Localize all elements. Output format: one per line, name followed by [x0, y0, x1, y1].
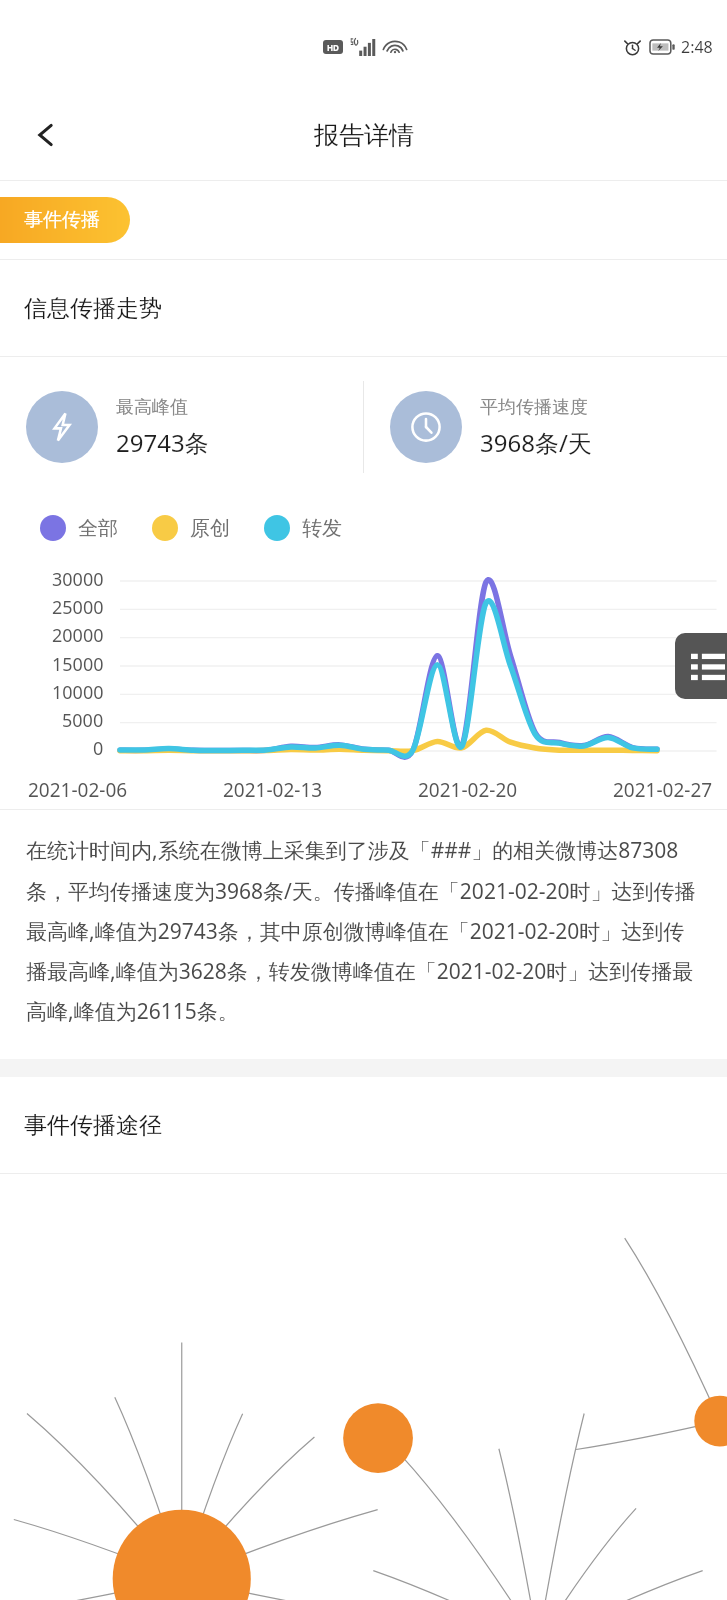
- staticText: 30000: [52, 567, 104, 592]
- button[interactable]: List view: [675, 633, 727, 699]
- staticText: 最高峰值: [116, 396, 188, 419]
- staticText: 15000: [52, 652, 104, 677]
- staticText: 信息传播走势: [24, 294, 162, 323]
- staticText: 事件传播: [24, 208, 100, 232]
- staticText: 转发: [302, 516, 342, 541]
- staticText: 2021-02-20: [418, 777, 518, 803]
- staticText: 29743条: [116, 426, 209, 459]
- button[interactable]: 平均传播速度: [390, 357, 727, 497]
- staticText: HD: [327, 42, 339, 53]
- staticText: 20000: [52, 623, 104, 648]
- staticText: 25000: [52, 595, 104, 620]
- button[interactable]: 原创: [152, 515, 230, 541]
- staticText: 0: [93, 736, 104, 761]
- staticText: 3968条/天: [480, 426, 592, 459]
- button[interactable]: 转发: [264, 515, 342, 541]
- staticText: 2021-02-27: [613, 777, 713, 803]
- staticText: 2:48: [681, 36, 713, 58]
- staticText: 2021-02-06: [28, 777, 128, 803]
- button[interactable]: 全部: [40, 515, 118, 541]
- staticText: 2021-02-13: [223, 777, 323, 803]
- staticText: 全部: [78, 516, 118, 541]
- staticText: 10000: [52, 680, 104, 705]
- staticText: 平均传播速度: [480, 396, 588, 419]
- staticText: 原创: [190, 516, 230, 541]
- staticText: 报告详情: [314, 120, 414, 151]
- button[interactable]: 最高峰值: [26, 357, 363, 497]
- button[interactable]: 事件传播: [0, 197, 130, 243]
- staticText: 事件传播途径: [24, 1111, 162, 1140]
- staticText: 5000: [62, 708, 104, 733]
- button[interactable]: Back: [18, 107, 74, 163]
- staticText: 在统计时间内,系统在微博上采集到了涉及「###」的相关微博达87308条，平均传…: [26, 836, 705, 1025]
